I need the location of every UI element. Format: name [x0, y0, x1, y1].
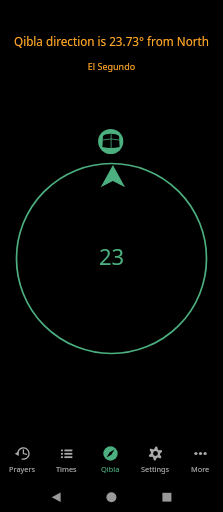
staticText: More: [191, 464, 210, 474]
staticText: El Segundo: [0, 60, 223, 72]
button[interactable]: Qibla: [88, 435, 133, 482]
button[interactable]: Back: [41, 482, 71, 512]
staticText: Qibla direction is 23.73° from North: [0, 33, 223, 49]
staticText: Settings: [141, 464, 170, 474]
button[interactable]: Recent apps: [152, 482, 182, 512]
button[interactable]: Home: [96, 482, 126, 512]
staticText: 23: [0, 241, 223, 271]
button[interactable]: Times: [44, 435, 88, 482]
button[interactable]: Qibla compass dial: [16, 163, 207, 354]
staticText: Prayers: [9, 464, 36, 474]
staticText: Times: [56, 464, 77, 474]
button[interactable]: Settings: [133, 435, 178, 482]
button[interactable]: More: [178, 435, 223, 482]
staticText: Qibla: [101, 464, 120, 474]
button[interactable]: Prayers: [0, 435, 44, 482]
